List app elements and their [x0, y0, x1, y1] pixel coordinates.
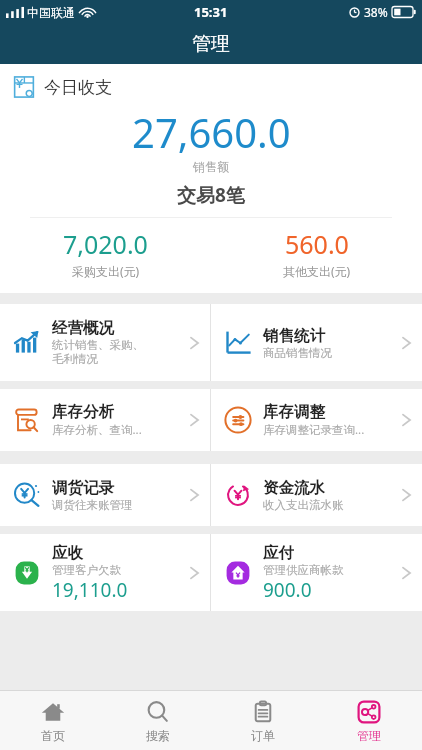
- staticText: 7,020.0: [63, 227, 148, 261]
- staticText: 应收: [52, 543, 83, 563]
- staticText: 管理客户欠款: [52, 563, 121, 577]
- button[interactable]: 库存调整: [211, 389, 422, 451]
- staticText: 560.0: [285, 227, 349, 261]
- staticText: 19,110.0: [52, 577, 128, 603]
- staticText: 采购支出(元): [72, 263, 140, 279]
- staticText: 搜索: [146, 728, 170, 743]
- staticText: 库存分析、查询...: [52, 422, 142, 438]
- button[interactable]: 管理: [316, 691, 422, 750]
- button[interactable]: 经营概况: [0, 304, 210, 381]
- button[interactable]: 调货记录: [0, 464, 210, 526]
- staticText: 库存分析: [52, 402, 114, 422]
- staticText: 商品销售情况: [263, 346, 332, 360]
- button[interactable]: 资金流水: [211, 464, 422, 526]
- staticText: 销售额: [193, 159, 229, 174]
- staticText: 今日收支: [44, 77, 112, 98]
- staticText: 其他支出(元): [283, 263, 351, 279]
- staticText: 收入支出流水账: [263, 498, 344, 512]
- staticText: 管理供应商帐款: [263, 563, 344, 577]
- button[interactable]: 应付: [211, 534, 422, 611]
- staticText: 库存调整: [263, 402, 325, 422]
- staticText: 中国联通: [27, 5, 75, 20]
- staticText: 27,660.0: [132, 105, 291, 159]
- staticText: 900.0: [263, 577, 312, 603]
- staticText: 应付: [263, 543, 294, 563]
- button[interactable]: 搜索: [105, 691, 210, 750]
- staticText: 统计销售、采购、 毛利情况: [52, 338, 144, 367]
- staticText: 资金流水: [263, 478, 325, 498]
- staticText: 交易8笔: [177, 182, 245, 208]
- staticText: 订单: [251, 728, 275, 743]
- staticText: 调货记录: [52, 478, 114, 498]
- button[interactable]: 订单: [210, 691, 316, 750]
- staticText: 管理: [192, 32, 230, 56]
- staticText: 经营概况: [52, 318, 114, 338]
- staticText: 销售统计: [263, 326, 325, 346]
- staticText: 管理: [357, 728, 381, 743]
- staticText: 38%: [364, 4, 388, 20]
- button[interactable]: 应收: [0, 534, 210, 611]
- staticText: 15:31: [194, 3, 228, 21]
- button[interactable]: 销售统计: [211, 304, 422, 381]
- staticText: 库存调整记录查询...: [263, 422, 365, 438]
- button[interactable]: 首页: [0, 691, 105, 750]
- staticText: 调货往来账管理: [52, 498, 133, 512]
- staticText: 首页: [41, 728, 65, 743]
- button[interactable]: 库存分析: [0, 389, 210, 451]
